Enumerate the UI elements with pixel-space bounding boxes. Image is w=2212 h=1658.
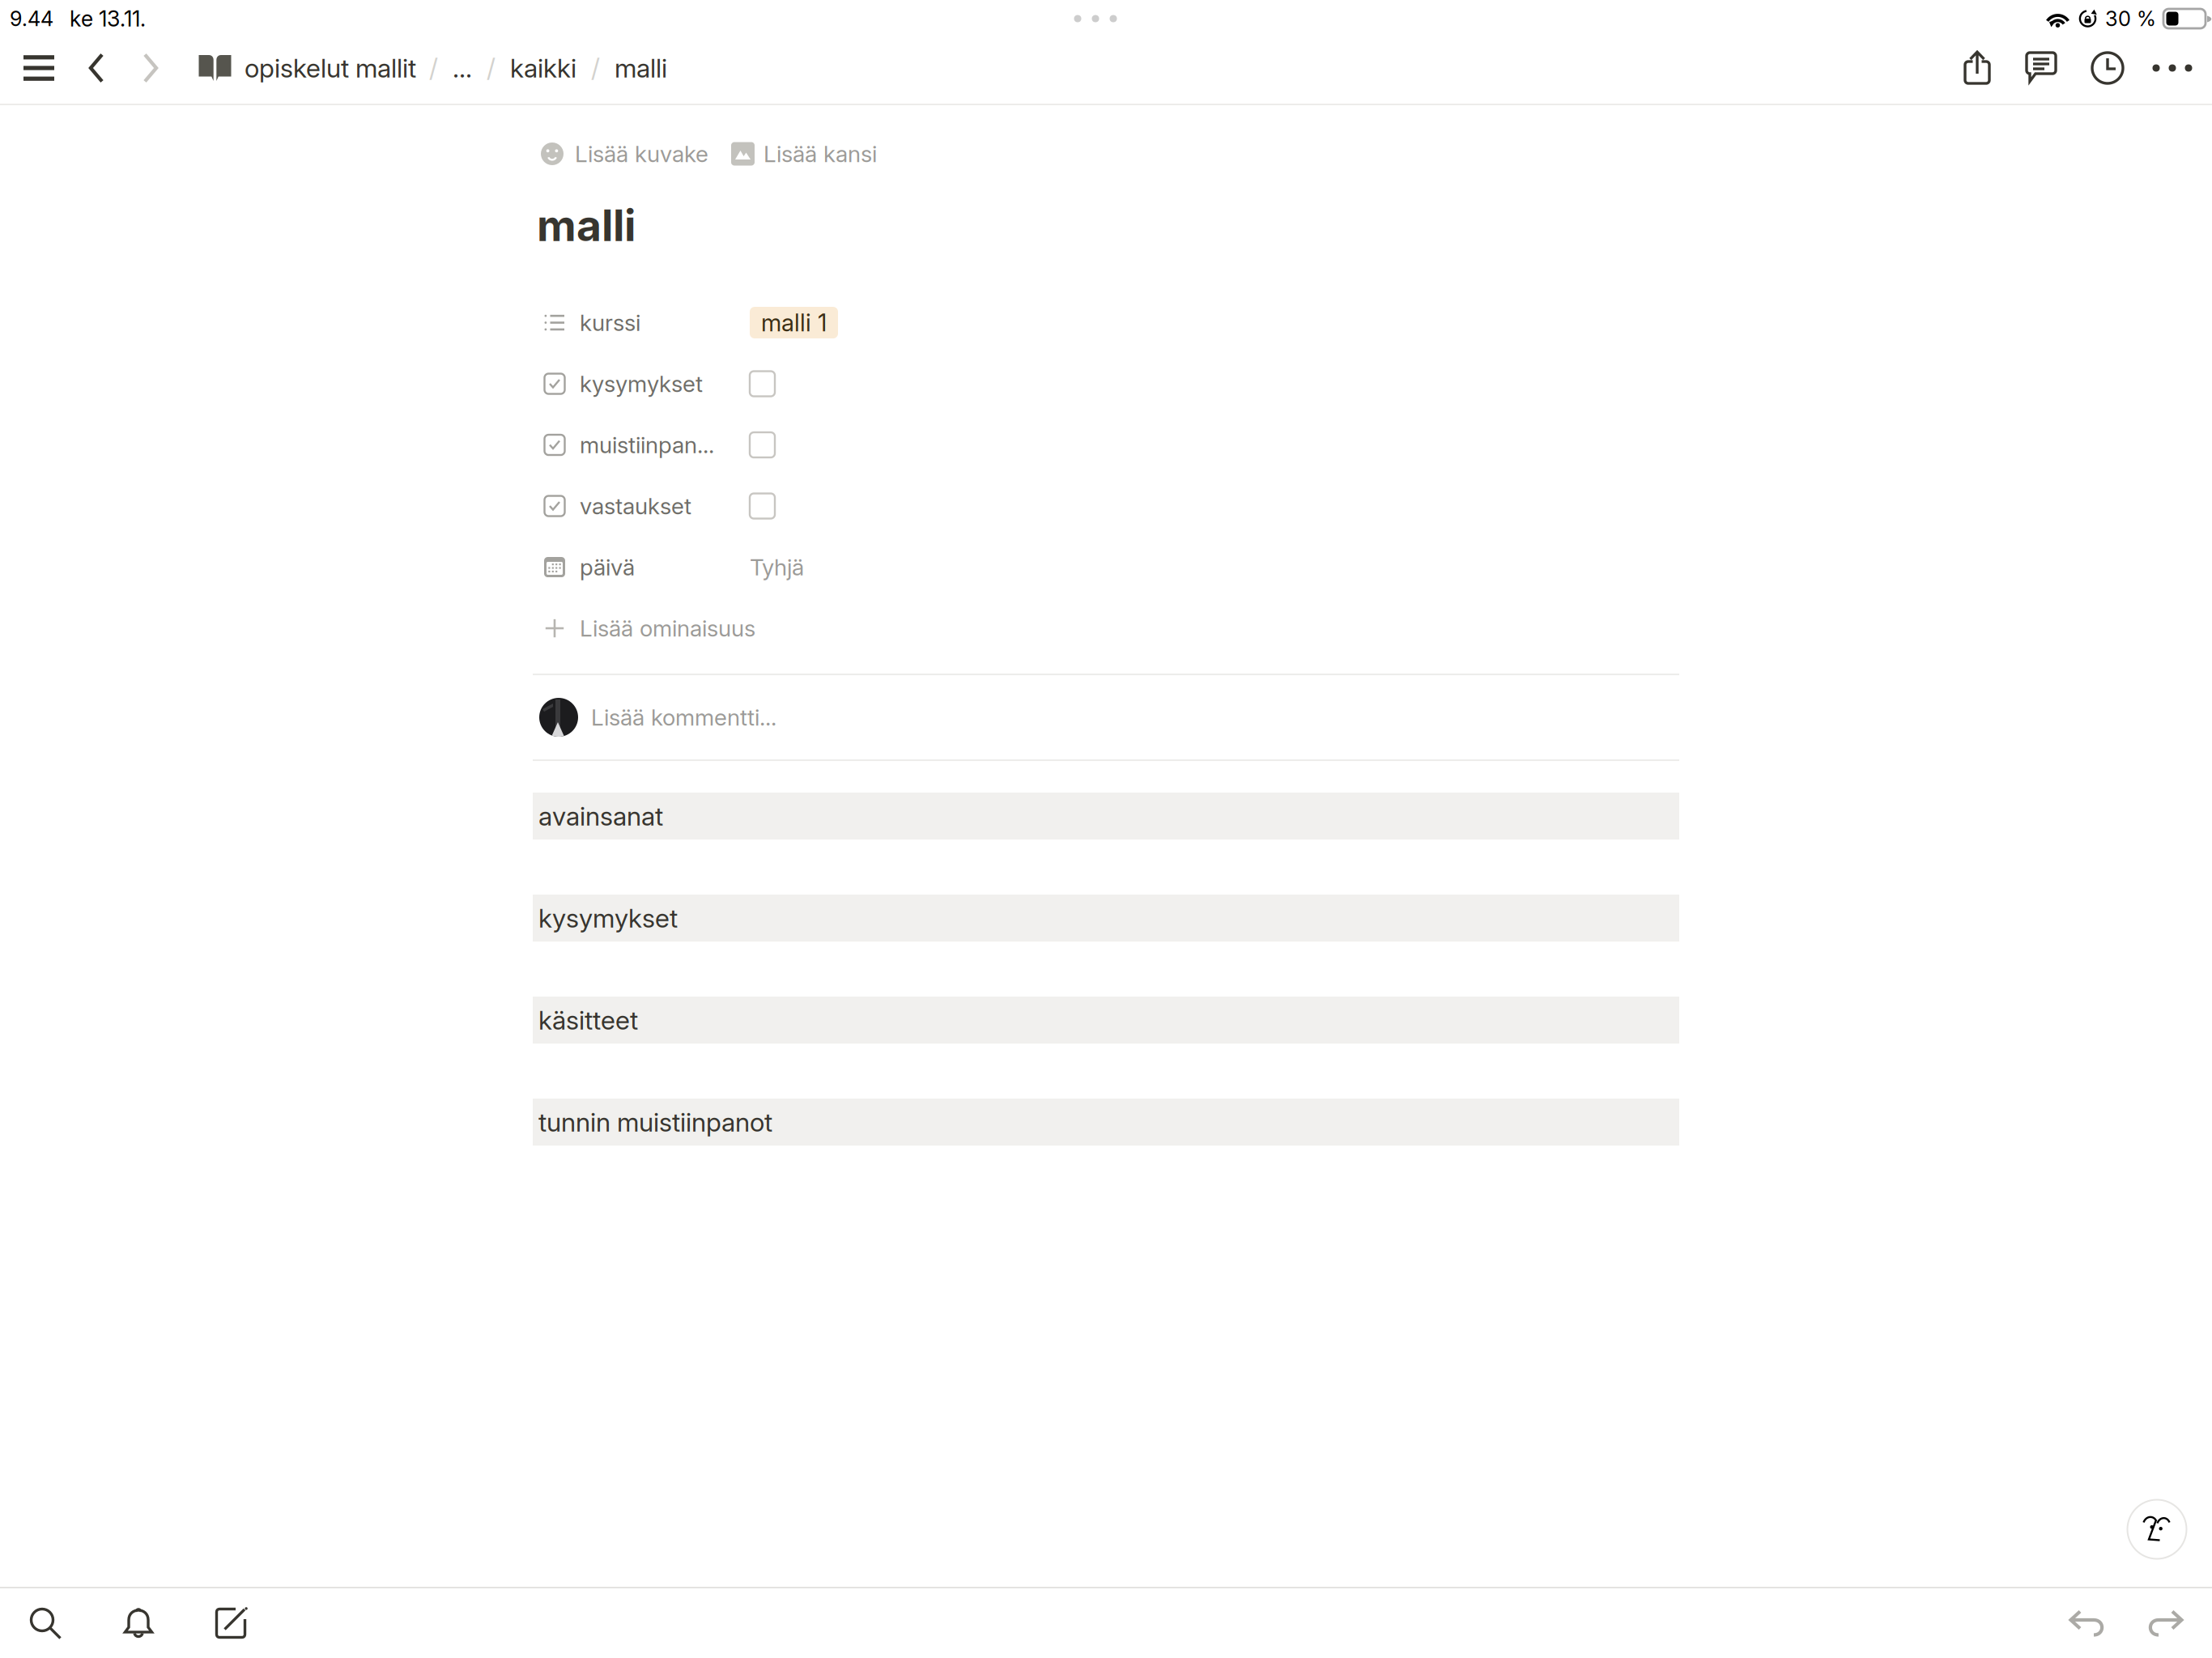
button[interactable]: Toggle checkbox	[750, 366, 783, 401]
button[interactable]: Tyhjä	[750, 549, 815, 585]
staticText: Lisää kuvake	[575, 140, 708, 168]
button[interactable]: ...	[445, 45, 480, 91]
staticText: kysymykset	[538, 902, 678, 934]
staticText: tunnin muistiinpanot	[538, 1106, 772, 1138]
staticText: 30 %	[2105, 6, 2156, 31]
button[interactable]: kysymykset	[533, 895, 1679, 942]
staticText: päivä	[580, 553, 635, 581]
button[interactable]: vastaukset	[533, 486, 750, 526]
staticText: Lisää kansi	[764, 140, 877, 168]
staticText: Lisää kommentti...	[591, 704, 776, 731]
button[interactable]: kaikki	[502, 45, 585, 91]
staticText: opiskelut mallit	[245, 52, 416, 84]
staticText: /	[429, 52, 438, 84]
button[interactable]: Forward	[130, 44, 171, 92]
staticText: kysymykset	[580, 370, 703, 397]
staticText: malli	[615, 52, 667, 84]
staticText: Tyhjä	[750, 553, 804, 581]
staticText: vastaukset	[580, 492, 691, 520]
button[interactable]: Lisää ominaisuus	[533, 608, 873, 648]
button[interactable]: Lisää kommentti...	[533, 675, 1679, 759]
button[interactable]: Lisää kansi	[724, 136, 884, 172]
button[interactable]: Search	[11, 1588, 79, 1658]
button[interactable]: Inbox	[104, 1588, 172, 1658]
button[interactable]: Notion AI	[2123, 1495, 2191, 1563]
button[interactable]: päivä	[533, 547, 750, 587]
button[interactable]: kurssi	[533, 302, 750, 343]
button[interactable]: Updates	[2078, 44, 2138, 92]
staticText: kaikki	[510, 52, 576, 84]
button[interactable]: käsitteet	[533, 997, 1679, 1044]
button[interactable]: New page	[198, 1588, 266, 1658]
staticText: Lisää ominaisuus	[580, 615, 755, 642]
staticText: ke 13.11.	[70, 6, 146, 32]
staticText: malli	[537, 199, 636, 251]
staticText: /	[487, 52, 496, 84]
staticText: muistiinpan...	[580, 431, 714, 459]
staticText: /	[591, 52, 600, 84]
button[interactable]: Lisää kuvake	[534, 136, 716, 172]
staticText: malli 1	[761, 308, 827, 337]
button[interactable]: opiskelut mallit	[192, 45, 423, 91]
staticText: kurssi	[580, 309, 640, 336]
staticText: 9.44	[10, 6, 53, 31]
button[interactable]: malli	[606, 45, 675, 91]
button[interactable]: Comments	[2013, 44, 2073, 92]
button[interactable]: Share	[1948, 44, 2008, 92]
button[interactable]: muistiinpan...	[533, 425, 750, 465]
button[interactable]: Undo	[2053, 1588, 2121, 1658]
button[interactable]: More options	[2142, 44, 2202, 92]
button[interactable]: Redo	[2131, 1588, 2199, 1658]
button[interactable]: kysymykset	[533, 363, 750, 404]
button[interactable]: malli 1	[750, 307, 838, 338]
staticText: ...	[453, 52, 472, 84]
button[interactable]: avainsanat	[533, 793, 1679, 840]
button[interactable]: Sidebar	[16, 44, 62, 92]
staticText: avainsanat	[538, 800, 663, 832]
staticText: käsitteet	[538, 1004, 638, 1036]
button[interactable]: Toggle checkbox	[750, 427, 783, 462]
button[interactable]: tunnin muistiinpanot	[533, 1099, 1679, 1146]
button[interactable]: Back	[76, 44, 117, 92]
button[interactable]: Toggle checkbox	[750, 489, 783, 523]
